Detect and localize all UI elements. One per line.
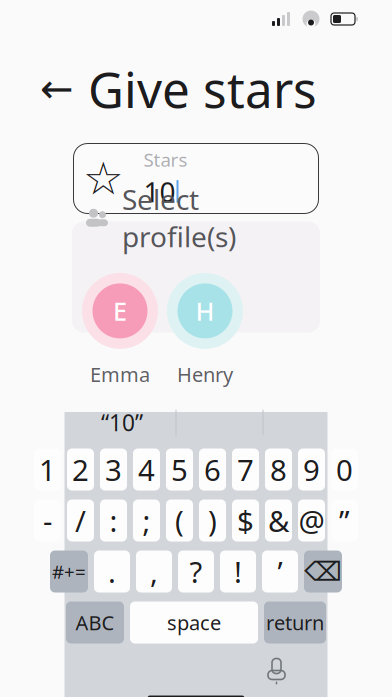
- staticText: ?: [189, 552, 202, 591]
- staticText: H: [195, 294, 214, 328]
- staticText: ): [208, 501, 217, 540]
- button[interactable]: .: [94, 550, 130, 592]
- button[interactable]: 2: [67, 448, 94, 490]
- staticText: :: [109, 501, 117, 540]
- staticText: .: [108, 552, 116, 591]
- button[interactable]: (: [166, 499, 193, 541]
- staticText: ☆: [83, 153, 124, 204]
- staticText: 10: [143, 173, 175, 210]
- button[interactable]: ’: [262, 550, 298, 592]
- staticText: Stars: [143, 147, 187, 172]
- button[interactable]: ;: [133, 499, 160, 541]
- staticText: ←: [40, 66, 74, 111]
- button[interactable]: space: [130, 601, 258, 643]
- staticText: Henry: [177, 361, 233, 387]
- staticText: ,: [150, 552, 158, 591]
- staticText: ;: [142, 501, 150, 540]
- button[interactable]: :: [100, 499, 127, 541]
- staticText: 3: [105, 450, 122, 489]
- button[interactable]: E: [82, 273, 158, 387]
- button[interactable]: Back: [40, 72, 74, 106]
- staticText: E: [113, 294, 127, 328]
- button[interactable]: 0: [331, 448, 358, 490]
- staticText: 9: [303, 450, 320, 489]
- button[interactable]: ): [199, 499, 226, 541]
- staticText: 7: [237, 450, 254, 489]
- staticText: ABC: [75, 609, 114, 636]
- staticText: $: [237, 501, 254, 540]
- button[interactable]: /: [67, 499, 94, 541]
- button[interactable]: 6: [199, 448, 226, 490]
- button[interactable]: 8: [265, 448, 292, 490]
- staticText: 8: [270, 450, 287, 489]
- staticText: return: [266, 609, 324, 636]
- staticText: 0: [336, 450, 353, 489]
- staticText: !: [234, 552, 242, 591]
- button[interactable]: ☆: [73, 143, 318, 213]
- button[interactable]: 9: [298, 448, 325, 490]
- button[interactable]: $: [232, 499, 259, 541]
- button[interactable]: -: [34, 499, 61, 541]
- staticText: -: [43, 501, 52, 540]
- button[interactable]: ”: [331, 499, 358, 541]
- staticText: space: [167, 609, 221, 636]
- staticText: 5: [171, 450, 188, 489]
- button[interactable]: ABC: [66, 601, 124, 643]
- staticText: ⌫: [304, 556, 342, 587]
- staticText: Select profile(s): [122, 180, 236, 255]
- button[interactable]: ?: [178, 550, 214, 592]
- staticText: ’: [277, 552, 282, 591]
- button[interactable]: 3: [100, 448, 127, 490]
- staticText: &: [268, 501, 289, 540]
- button[interactable]: 4: [133, 448, 160, 490]
- staticText: 6: [204, 450, 221, 489]
- staticText: ”: [339, 501, 350, 540]
- button[interactable]: H: [167, 273, 243, 387]
- staticText: 2: [72, 450, 89, 489]
- staticText: “10”: [101, 407, 143, 437]
- button[interactable]: ,: [136, 550, 172, 592]
- staticText: @: [298, 501, 324, 540]
- staticText: Give stars: [88, 56, 317, 121]
- button[interactable]: Delete: [304, 550, 342, 592]
- staticText: (: [175, 501, 184, 540]
- staticText: Emma: [90, 361, 150, 387]
- button[interactable]: &: [265, 499, 292, 541]
- staticText: #+=: [52, 559, 86, 584]
- button[interactable]: return: [264, 601, 326, 643]
- button[interactable]: 5: [166, 448, 193, 490]
- button[interactable]: Dictate: [259, 655, 293, 687]
- staticText: 4: [138, 450, 155, 489]
- staticText: /: [75, 501, 86, 540]
- button[interactable]: #+=: [50, 550, 88, 592]
- button[interactable]: !: [220, 550, 256, 592]
- button[interactable]: 1: [34, 448, 61, 490]
- button[interactable]: @: [298, 499, 325, 541]
- button[interactable]: 7: [232, 448, 259, 490]
- staticText: 1: [39, 450, 56, 489]
